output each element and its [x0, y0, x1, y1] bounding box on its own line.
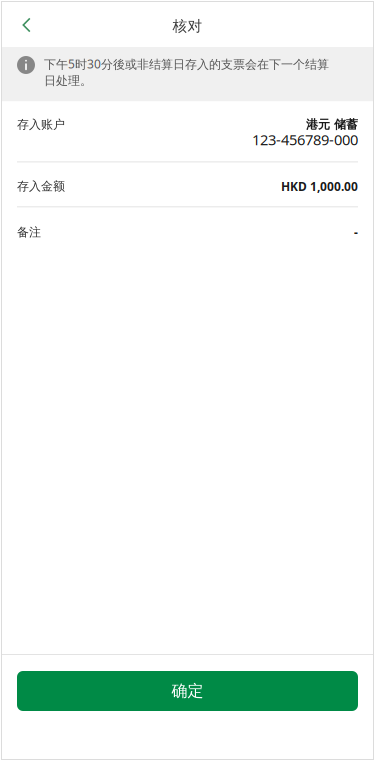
staticText: 确定: [171, 681, 203, 701]
button[interactable]: 确定: [17, 671, 358, 711]
staticText: 下午5时30分後或非结算日存入的支票会在下一个结算日处理。: [44, 56, 329, 88]
staticText: -: [354, 224, 358, 240]
staticText: 存入账户: [17, 117, 65, 132]
staticText: 存入金额: [17, 179, 65, 194]
button[interactable]: Back: [2, 2, 46, 47]
staticText: HKD 1,000.00: [281, 178, 358, 194]
staticText: 核对: [172, 17, 202, 35]
staticText: 备注: [17, 225, 41, 240]
staticText: 123-456789-000: [252, 130, 358, 149]
staticText: 港元 储蓄: [306, 117, 358, 132]
